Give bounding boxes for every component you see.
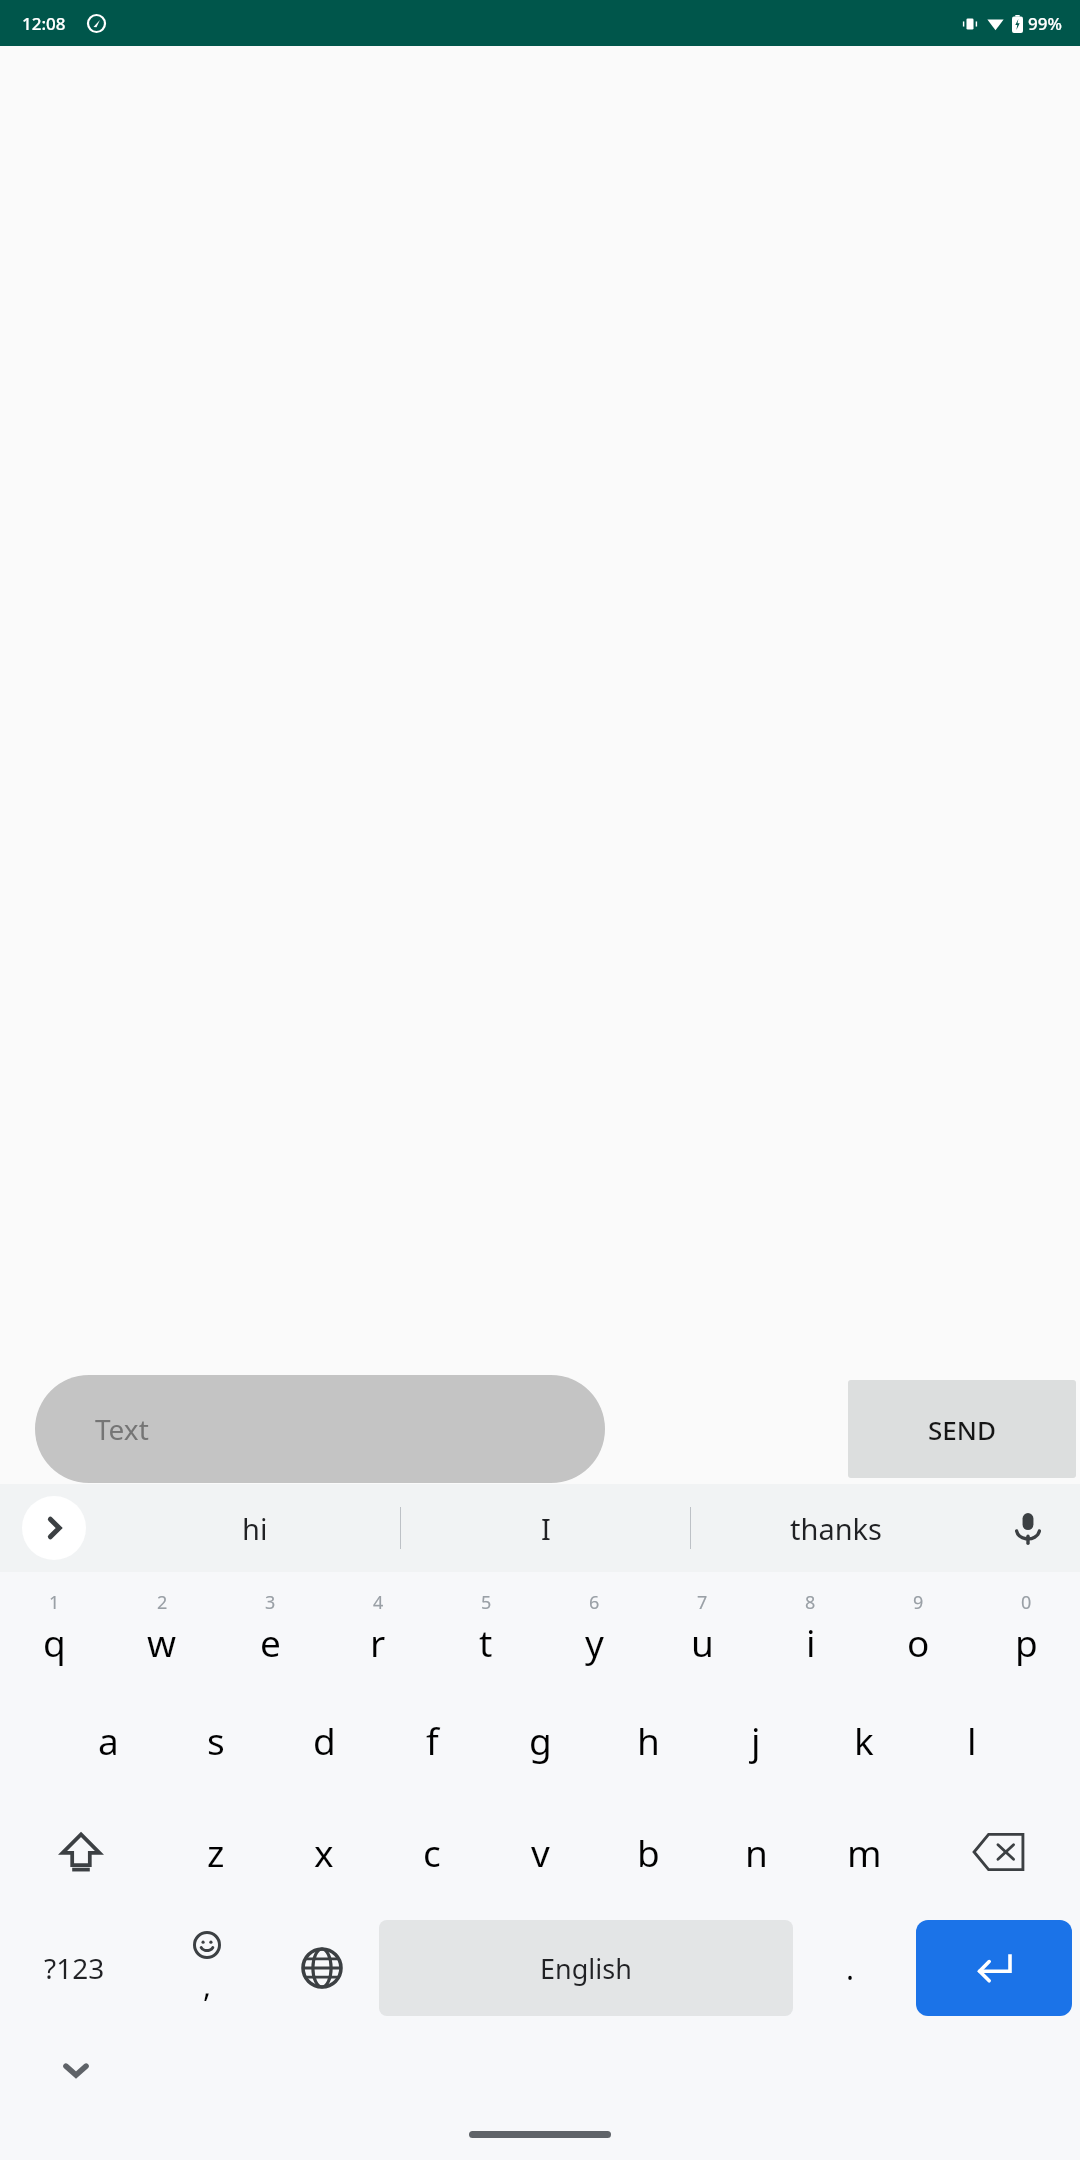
button[interactable]: thanks bbox=[691, 1484, 980, 1572]
staticText: h bbox=[637, 1715, 660, 1765]
button[interactable]: 5 bbox=[432, 1572, 540, 1684]
staticText: 6 bbox=[589, 1590, 600, 1615]
staticText: c bbox=[423, 1827, 441, 1877]
staticText: y bbox=[585, 1617, 604, 1667]
staticText: . bbox=[846, 1948, 855, 1989]
staticText: SEND bbox=[928, 1412, 996, 1447]
button[interactable]: 3 bbox=[216, 1572, 324, 1684]
staticText: r bbox=[370, 1617, 386, 1667]
button[interactable]: 2 bbox=[108, 1572, 216, 1684]
button[interactable]: 4 bbox=[324, 1572, 432, 1684]
button[interactable]: Enter bbox=[916, 1920, 1072, 2016]
button[interactable]: f bbox=[378, 1684, 486, 1796]
button[interactable]: j bbox=[702, 1684, 810, 1796]
button[interactable]: m bbox=[810, 1796, 918, 1908]
button[interactable]: c bbox=[378, 1796, 486, 1908]
staticText: , bbox=[203, 1965, 212, 2006]
button[interactable]: Emoji and comma bbox=[149, 1908, 264, 2028]
button[interactable]: Change language bbox=[264, 1908, 379, 2028]
button[interactable]: b bbox=[594, 1796, 702, 1908]
staticText: x bbox=[314, 1827, 334, 1877]
button[interactable]: Hide keyboard bbox=[48, 2042, 104, 2098]
staticText: j bbox=[751, 1715, 761, 1765]
button[interactable]: l bbox=[918, 1684, 1026, 1796]
button[interactable]: k bbox=[810, 1684, 918, 1796]
staticText: n bbox=[745, 1827, 768, 1877]
staticText: thanks bbox=[790, 1509, 882, 1548]
staticText: w bbox=[147, 1617, 177, 1667]
button[interactable]: g bbox=[486, 1684, 594, 1796]
staticText: f bbox=[426, 1715, 439, 1765]
staticText: 8 bbox=[805, 1590, 816, 1615]
button[interactable]: 8 bbox=[756, 1572, 864, 1684]
button[interactable]: v bbox=[486, 1796, 594, 1908]
staticText: l bbox=[967, 1715, 977, 1765]
button[interactable]: x bbox=[270, 1796, 378, 1908]
staticText: e bbox=[260, 1617, 281, 1667]
button[interactable]: d bbox=[270, 1684, 378, 1796]
staticText: 99% bbox=[1028, 12, 1062, 35]
staticText: English bbox=[540, 1950, 632, 1987]
staticText: k bbox=[854, 1715, 874, 1765]
staticText: g bbox=[529, 1715, 552, 1765]
staticText: z bbox=[207, 1827, 225, 1877]
staticText: 5 bbox=[481, 1590, 492, 1615]
button[interactable]: Text bbox=[35, 1375, 605, 1483]
staticText: 4 bbox=[373, 1590, 384, 1615]
staticText: o bbox=[907, 1617, 930, 1667]
button[interactable]: Shift bbox=[0, 1796, 162, 1908]
button[interactable]: 7 bbox=[648, 1572, 756, 1684]
staticText: 3 bbox=[265, 1590, 276, 1615]
button[interactable]: z bbox=[162, 1796, 270, 1908]
staticText: m bbox=[847, 1827, 882, 1877]
staticText: hi bbox=[242, 1509, 268, 1548]
staticText: v bbox=[531, 1827, 550, 1877]
button[interactable]: 9 bbox=[864, 1572, 972, 1684]
button[interactable]: . bbox=[793, 1908, 908, 2028]
staticText: t bbox=[479, 1617, 493, 1667]
staticText: Text bbox=[95, 1410, 149, 1448]
button[interactable]: SEND bbox=[848, 1380, 1076, 1478]
staticText: i bbox=[806, 1617, 816, 1667]
button[interactable]: h bbox=[594, 1684, 702, 1796]
staticText: b bbox=[637, 1827, 660, 1877]
button[interactable]: 0 bbox=[972, 1572, 1080, 1684]
staticText: 9 bbox=[913, 1590, 924, 1615]
staticText: d bbox=[313, 1715, 336, 1765]
staticText: q bbox=[43, 1617, 66, 1667]
staticText: 2 bbox=[157, 1590, 168, 1615]
button[interactable]: Expand toolbar bbox=[22, 1496, 86, 1560]
staticText: I bbox=[541, 1509, 551, 1548]
button[interactable]: ?123 bbox=[0, 1908, 149, 2028]
staticText: a bbox=[98, 1715, 119, 1765]
button[interactable]: s bbox=[162, 1684, 270, 1796]
staticText: s bbox=[207, 1715, 225, 1765]
button[interactable]: 6 bbox=[540, 1572, 648, 1684]
staticText: 0 bbox=[1021, 1590, 1032, 1615]
button[interactable]: I bbox=[401, 1484, 690, 1572]
button[interactable]: a bbox=[54, 1684, 162, 1796]
button[interactable]: 1 bbox=[0, 1572, 108, 1684]
staticText: 7 bbox=[697, 1590, 708, 1615]
staticText: ?123 bbox=[44, 1949, 105, 1987]
button[interactable]: hi bbox=[110, 1484, 400, 1572]
button[interactable]: Voice input bbox=[998, 1498, 1058, 1558]
staticText: u bbox=[691, 1617, 714, 1667]
button[interactable]: n bbox=[702, 1796, 810, 1908]
button[interactable]: English bbox=[379, 1920, 793, 2016]
staticText: 12:08 bbox=[22, 12, 66, 35]
button[interactable]: Backspace bbox=[918, 1796, 1080, 1908]
staticText: 1 bbox=[49, 1590, 60, 1615]
staticText: p bbox=[1015, 1617, 1038, 1667]
